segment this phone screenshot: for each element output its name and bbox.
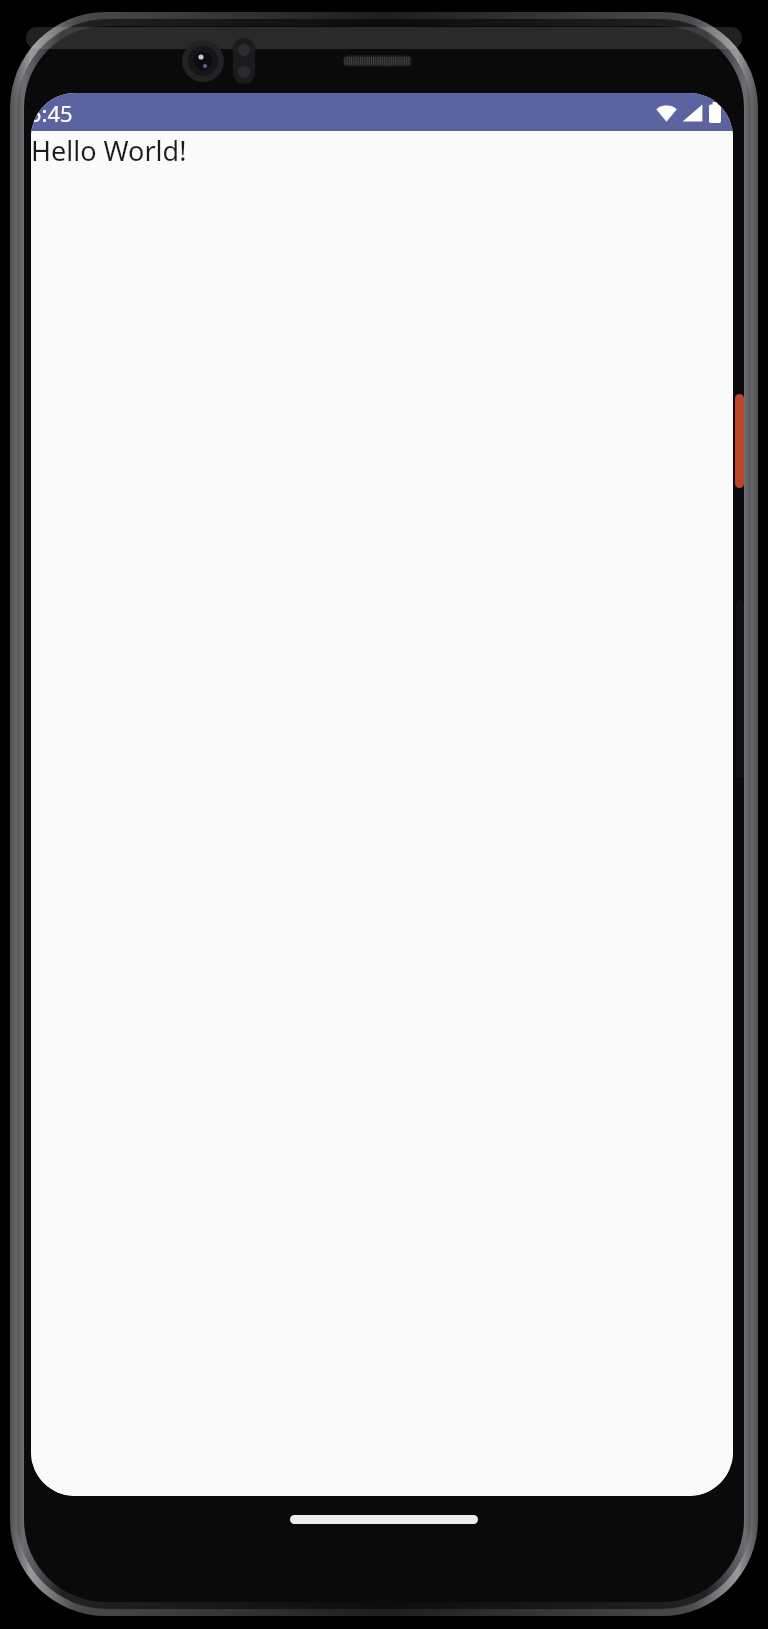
staticText: 5:45	[31, 98, 73, 128]
staticText: Hello World!	[31, 132, 187, 169]
